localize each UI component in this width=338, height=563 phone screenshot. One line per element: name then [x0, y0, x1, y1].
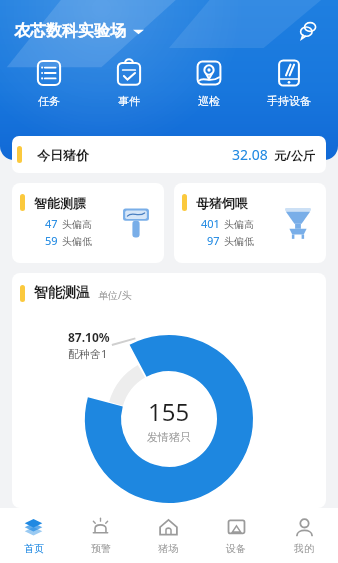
- staticText: 智能测温: [34, 284, 90, 302]
- staticText: 头偏低: [62, 235, 92, 248]
- staticText: 事件: [118, 94, 140, 108]
- staticText: 47: [45, 216, 58, 231]
- staticText: 首页: [24, 542, 44, 555]
- staticText: 智能测膘: [34, 195, 86, 211]
- button[interactable]: 巡检: [172, 56, 246, 110]
- button[interactable]: 智能测温: [12, 273, 326, 508]
- staticText: 我的: [294, 542, 314, 555]
- staticText: 单位/头: [98, 288, 132, 302]
- staticText: 猪场: [158, 542, 178, 555]
- button[interactable]: 猪场: [134, 508, 202, 563]
- button[interactable]: 预警: [67, 508, 134, 563]
- staticText: 32.08: [232, 145, 268, 164]
- staticText: 今日猪价: [37, 147, 89, 163]
- staticText: 预警: [91, 542, 111, 555]
- staticText: 配种舍1: [68, 346, 108, 361]
- button[interactable]: 智能测膘: [12, 183, 164, 263]
- button[interactable]: 手持设备: [252, 56, 326, 110]
- button[interactable]: 农芯数科实验场: [14, 21, 144, 41]
- staticText: 手持设备: [267, 94, 311, 108]
- staticText: 头偏高: [224, 218, 254, 231]
- button[interactable]: 母猪饲喂: [174, 183, 326, 263]
- button[interactable]: 我的: [270, 508, 338, 563]
- staticText: 元/公斤: [274, 147, 315, 163]
- staticText: 头偏高: [62, 218, 92, 231]
- button[interactable]: 设备: [202, 508, 270, 563]
- staticText: 头偏低: [224, 235, 254, 248]
- staticText: 设备: [226, 542, 246, 555]
- staticText: 59: [45, 233, 58, 248]
- button[interactable]: 任务: [12, 56, 86, 110]
- staticText: 发情猪只: [147, 430, 191, 444]
- staticText: 87.10%: [68, 329, 110, 345]
- button[interactable]: 首页: [0, 508, 67, 563]
- button[interactable]: 今日猪价: [12, 136, 326, 173]
- staticText: 母猪饲喂: [196, 195, 248, 211]
- staticText: 巡检: [198, 94, 220, 108]
- staticText: 155: [148, 395, 190, 428]
- staticText: 农芯数科实验场: [14, 21, 126, 41]
- staticText: 97: [207, 233, 220, 248]
- staticText: 任务: [38, 94, 60, 108]
- button[interactable]: 事件: [92, 56, 166, 110]
- staticText: 401: [201, 216, 220, 231]
- button[interactable]: Messages: [294, 16, 324, 46]
